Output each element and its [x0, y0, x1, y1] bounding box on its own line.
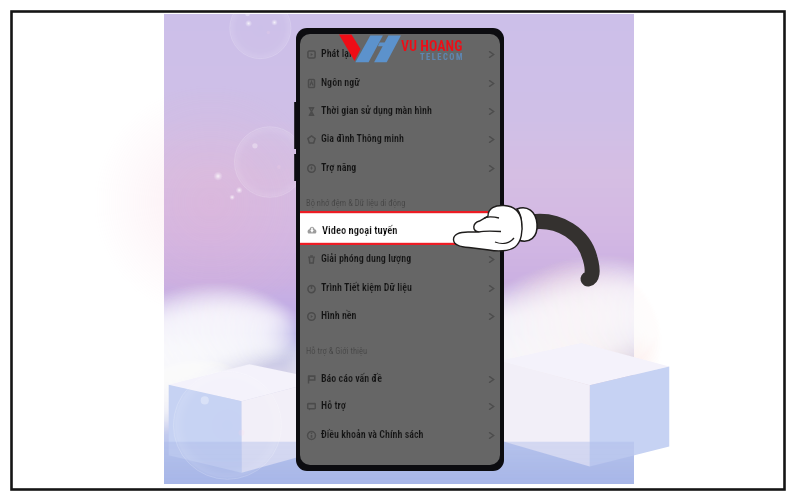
other: Pointing hand — [0, 0, 800, 500]
staticText: Hỗ trợ — [321, 400, 346, 412]
button[interactable]: Báo cáo vấn đề — [300, 365, 500, 393]
staticText: Điều khoản và Chính sách — [321, 429, 424, 441]
button[interactable]: Điều khoản và Chính sách — [300, 421, 500, 449]
button[interactable]: Phát lại — [300, 40, 500, 68]
staticText: Bộ nhớ đệm & Dữ liệu di động — [306, 198, 406, 208]
button[interactable]: Thời gian sử dụng màn hình — [300, 97, 500, 125]
staticText: Báo cáo vấn đề — [321, 373, 382, 385]
button[interactable]: Gia đình Thông minh — [300, 125, 500, 153]
staticText: Thời gian sử dụng màn hình — [321, 105, 432, 117]
staticText: Trợ năng — [321, 162, 357, 174]
button[interactable]: Hỗ trợ — [300, 392, 500, 420]
button[interactable]: Giải phóng dung lượng — [300, 245, 500, 273]
staticText: Video ngoại tuyến — [322, 224, 398, 236]
staticText: Ngôn ngữ — [321, 77, 360, 89]
button[interactable]: Trình Tiết kiệm Dữ liệu — [300, 274, 500, 302]
staticText: TELECOM — [420, 52, 464, 62]
button[interactable]: Trợ năng — [300, 154, 500, 182]
staticText: Hình nền — [321, 310, 357, 322]
staticText: Phát lại — [321, 48, 352, 60]
staticText: Trình Tiết kiệm Dữ liệu — [321, 282, 412, 294]
staticText: VU HOANG — [401, 38, 463, 54]
staticText: Gia đình Thông minh — [321, 133, 404, 145]
staticText: Hỗ trợ & Giới thiệu — [306, 346, 368, 356]
button[interactable]: Ngôn ngữ — [300, 69, 500, 97]
button[interactable]: Hình nền — [300, 302, 500, 330]
button[interactable]: Video ngoại tuyến — [300, 211, 500, 245]
staticText: Giải phóng dung lượng — [321, 253, 412, 265]
